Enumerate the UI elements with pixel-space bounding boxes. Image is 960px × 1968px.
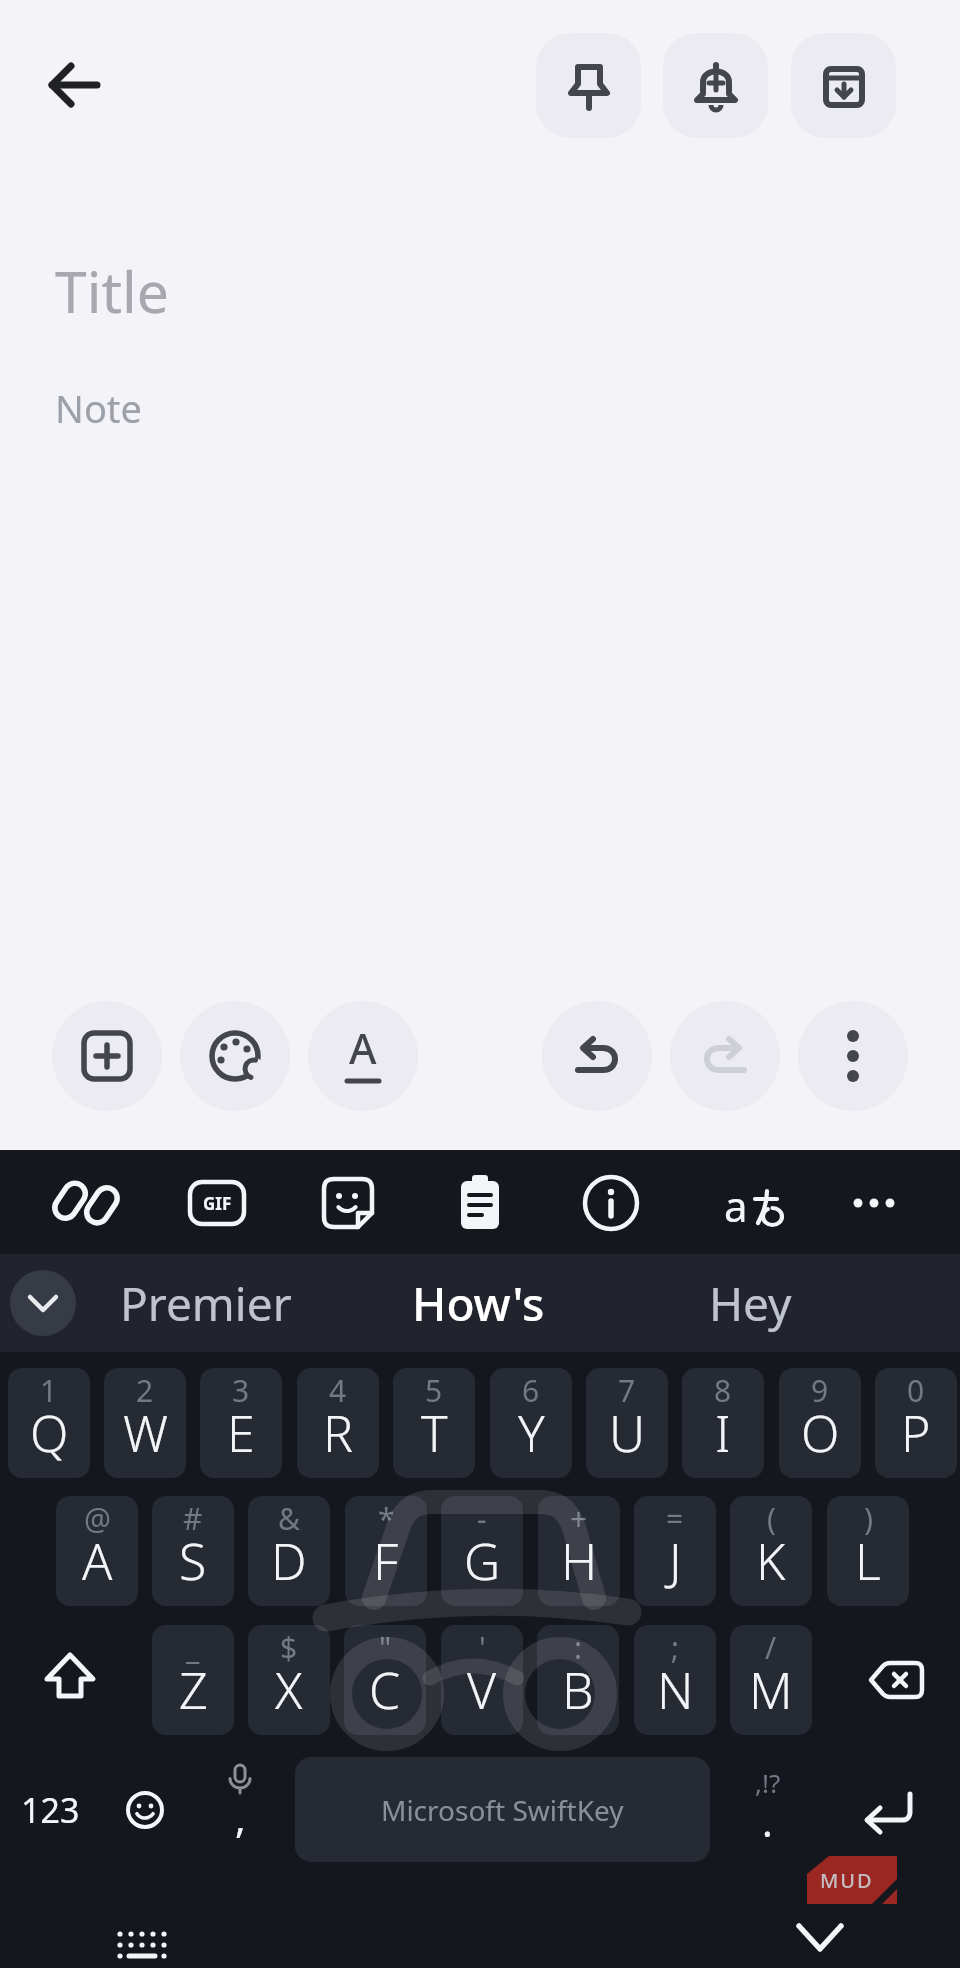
staticText: Hey [709, 1272, 792, 1335]
staticText: F [373, 1527, 399, 1595]
button[interactable] [790, 1912, 850, 1962]
button[interactable]: + [538, 1496, 620, 1606]
button[interactable]: Premier [100, 1254, 312, 1352]
button[interactable]: , [205, 1757, 275, 1862]
button[interactable] [542, 1001, 652, 1111]
button[interactable]: ( [730, 1496, 812, 1606]
staticText: $ [280, 1627, 298, 1668]
button[interactable]: * [345, 1496, 427, 1606]
button[interactable]: 1 [8, 1368, 90, 1478]
button[interactable]: 7 [586, 1368, 668, 1478]
button[interactable]: 0 [875, 1368, 957, 1478]
staticText: B [562, 1656, 594, 1724]
button[interactable]: # [152, 1496, 234, 1606]
button[interactable]: _ [152, 1625, 234, 1735]
button[interactable]: GIF [186, 1172, 248, 1234]
staticText: Note [55, 382, 143, 434]
staticText: How's [412, 1272, 545, 1335]
button[interactable]: ,!? [730, 1757, 805, 1862]
button[interactable]: How's [372, 1254, 584, 1352]
staticText: A [349, 1019, 377, 1076]
button[interactable]: a [711, 1172, 773, 1234]
button[interactable]: ' [441, 1625, 523, 1735]
staticText: " [379, 1627, 392, 1668]
staticText: Microsoft SwiftKey [381, 1791, 624, 1829]
button[interactable]: 6 [490, 1368, 572, 1478]
staticText: : [574, 1627, 583, 1668]
staticText: , [235, 1790, 246, 1844]
staticText: E [227, 1399, 255, 1467]
staticText: ( [767, 1498, 776, 1539]
button[interactable]: " [344, 1625, 426, 1735]
button[interactable]: 123 [10, 1757, 90, 1862]
staticText: Q [30, 1399, 69, 1467]
staticText: Title [55, 252, 169, 330]
button[interactable] [20, 1625, 120, 1735]
staticText: 123 [21, 1787, 80, 1833]
button[interactable] [52, 1001, 162, 1111]
staticText: K [756, 1527, 786, 1595]
staticText: ; [671, 1627, 680, 1668]
button[interactable]: $ [248, 1625, 330, 1735]
staticText: R [323, 1399, 353, 1467]
staticText: T [421, 1399, 448, 1467]
button[interactable]: 5 [393, 1368, 475, 1478]
staticText: 9 [811, 1370, 829, 1411]
button[interactable]: 4 [297, 1368, 379, 1478]
button[interactable]: Hey [644, 1254, 856, 1352]
button[interactable]: 8 [682, 1368, 764, 1478]
staticText: * [378, 1498, 395, 1539]
button[interactable]: 9 [779, 1368, 861, 1478]
button[interactable]: / [730, 1625, 812, 1735]
button[interactable]: ) [827, 1496, 909, 1606]
button[interactable]: - [441, 1496, 523, 1606]
staticText: I [715, 1399, 731, 1467]
button[interactable]: 3 [200, 1368, 282, 1478]
button[interactable] [670, 1001, 780, 1111]
button[interactable]: & [248, 1496, 330, 1606]
button[interactable] [317, 1172, 379, 1234]
staticText: @ [84, 1498, 111, 1539]
button[interactable] [449, 1172, 511, 1234]
staticText: P [901, 1399, 931, 1467]
staticText: Z [179, 1656, 208, 1724]
button[interactable] [845, 1625, 945, 1735]
button[interactable] [536, 33, 641, 138]
staticText: - [477, 1498, 487, 1539]
button[interactable] [798, 1001, 908, 1111]
button[interactable]: : [537, 1625, 619, 1735]
staticText: H [561, 1527, 598, 1595]
button[interactable] [663, 33, 768, 138]
button[interactable] [112, 1925, 172, 1965]
button[interactable] [105, 1757, 185, 1862]
button[interactable] [30, 50, 120, 120]
staticText: O [801, 1399, 840, 1467]
button[interactable] [180, 1001, 290, 1111]
button[interactable] [55, 1172, 117, 1234]
button[interactable]: A [308, 1001, 418, 1111]
staticText: _ [186, 1627, 200, 1668]
staticText: A [82, 1527, 113, 1595]
staticText: W [123, 1399, 168, 1467]
staticText: Premier [120, 1272, 292, 1335]
staticText: # [183, 1498, 203, 1539]
button[interactable]: @ [56, 1496, 138, 1606]
button[interactable] [791, 33, 896, 138]
button[interactable]: 2 [104, 1368, 186, 1478]
button[interactable] [580, 1172, 642, 1234]
button[interactable] [843, 1172, 905, 1234]
staticText: 2 [136, 1370, 154, 1411]
button[interactable]: = [634, 1496, 716, 1606]
staticText: 6 [522, 1370, 540, 1411]
staticText: 5 [425, 1370, 443, 1411]
staticText: 7 [618, 1370, 636, 1411]
staticText: V [467, 1656, 497, 1724]
button[interactable]: Microsoft SwiftKey [295, 1757, 710, 1862]
button[interactable] [835, 1757, 940, 1862]
button[interactable]: ; [634, 1625, 716, 1735]
staticText: 3 [232, 1370, 250, 1411]
staticText: L [855, 1527, 881, 1595]
staticText: U [609, 1399, 646, 1467]
staticText: 0 [907, 1370, 925, 1411]
button[interactable] [10, 1270, 76, 1336]
